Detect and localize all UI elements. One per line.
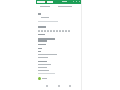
button[interactable]: Format [47,30,49,32]
button[interactable] [38,77,41,80]
button[interactable]: Format [53,30,55,32]
button[interactable]: Format [59,30,61,32]
button[interactable]: Format [68,30,70,32]
button[interactable]: Format [41,30,43,32]
button[interactable]: Format [50,30,52,32]
button[interactable]: Format [38,30,40,32]
button[interactable]: Format [56,30,58,32]
button[interactable]: Format [44,30,46,32]
button[interactable]: Format [65,30,67,32]
button[interactable] [36,0,81,4]
button[interactable]: Format [62,30,64,32]
